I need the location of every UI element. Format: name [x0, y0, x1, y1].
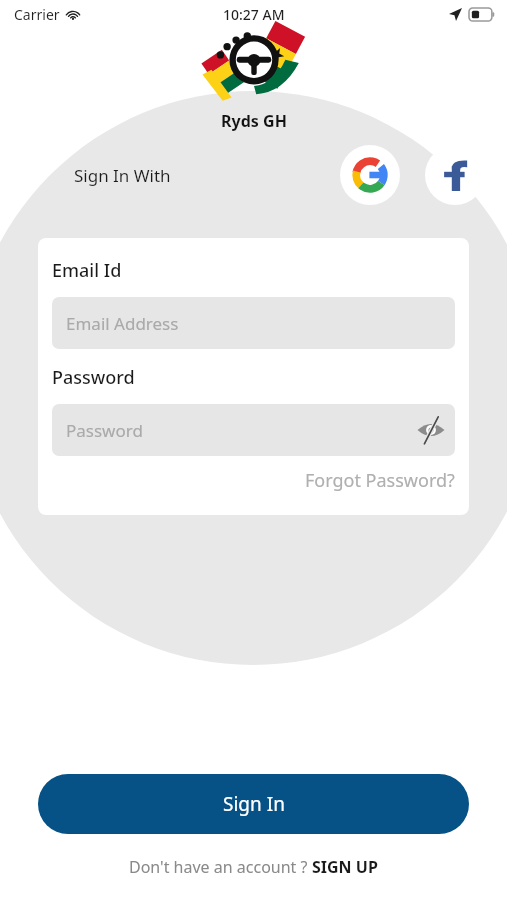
button[interactable]: Don't have an account ?	[0, 856, 507, 878]
button[interactable]: Sign in with Facebook	[425, 145, 485, 205]
staticText: Password	[52, 365, 135, 390]
button[interactable]: Sign in with Google	[340, 145, 400, 205]
staticText: Ryds GH	[221, 110, 287, 132]
staticText: Password	[66, 419, 143, 442]
button[interactable]: Email Address	[52, 297, 455, 349]
staticText: Email Id	[52, 258, 122, 283]
button[interactable]: Show password	[407, 406, 455, 454]
staticText: Don't have an account ?	[129, 856, 312, 878]
staticText: Sign In With	[74, 164, 171, 187]
staticText: Sign In	[223, 791, 285, 817]
button[interactable]: Forgot Password?	[305, 468, 455, 493]
button[interactable]: Sign In	[38, 774, 469, 834]
staticText: Email Address	[66, 312, 179, 335]
staticText: Carrier	[14, 5, 60, 24]
button[interactable]: Password	[52, 404, 455, 456]
staticText: 10:27 AM	[223, 5, 285, 24]
staticText: SIGN UP	[312, 856, 378, 878]
